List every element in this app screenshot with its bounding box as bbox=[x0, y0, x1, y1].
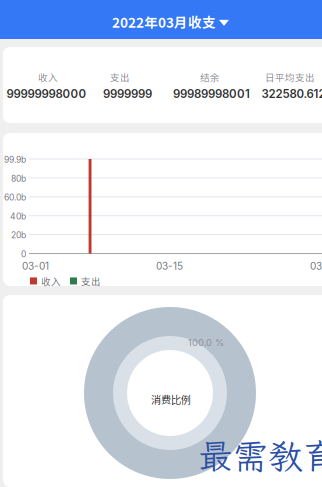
staticText: 80b bbox=[11, 173, 26, 184]
staticText: 9999999 bbox=[103, 87, 152, 101]
staticText: 0 bbox=[21, 249, 26, 259]
button[interactable]: 2022年03月收支 bbox=[107, 6, 234, 38]
staticText: 支出 bbox=[110, 70, 130, 84]
staticText: 支出 bbox=[81, 274, 101, 288]
staticText: 99.9b bbox=[4, 154, 26, 165]
staticText: 99999998000 bbox=[6, 87, 86, 101]
staticText: 2022年03月收支 bbox=[112, 12, 216, 32]
staticText: 60.0b bbox=[4, 192, 26, 203]
staticText: 100.0 % bbox=[188, 337, 224, 348]
staticText: 03- bbox=[310, 260, 322, 272]
staticText: 99989998001 bbox=[173, 87, 250, 101]
staticText: 03-01 bbox=[22, 260, 49, 272]
staticText: 322580.6129 bbox=[261, 87, 322, 101]
staticText: 收入 bbox=[41, 274, 61, 288]
staticText: 结余 bbox=[200, 70, 220, 84]
staticText: 收入 bbox=[38, 70, 58, 84]
staticText: 最需教育 bbox=[198, 433, 322, 479]
staticText: 03-15 bbox=[156, 260, 183, 272]
staticText: 40b bbox=[10, 211, 26, 221]
staticText: 消费比例 bbox=[151, 392, 191, 407]
staticText: 日平均支出 bbox=[265, 70, 315, 84]
staticText: 20b bbox=[11, 230, 26, 240]
